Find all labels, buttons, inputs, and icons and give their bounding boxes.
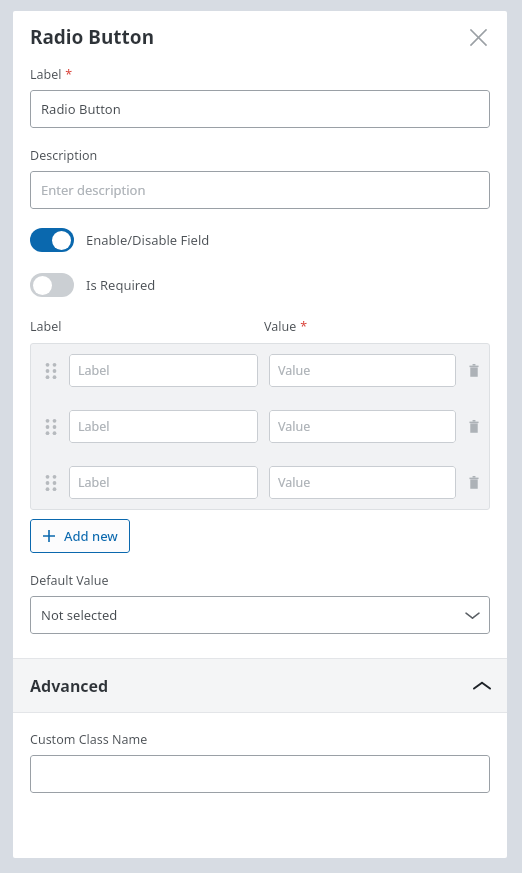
button[interactable]: Reorder <box>40 472 62 494</box>
staticText: Custom Class Name <box>30 731 148 748</box>
staticText: Description <box>30 147 98 164</box>
button[interactable]: Reorder <box>40 360 62 382</box>
staticText: * <box>297 318 308 335</box>
button[interactable]: Enter description <box>30 171 490 209</box>
button[interactable]: Value <box>269 466 456 499</box>
staticText: Value <box>264 318 297 335</box>
button[interactable] <box>30 755 490 793</box>
staticText: * <box>62 66 73 83</box>
button[interactable]: Is Required <box>30 273 156 297</box>
staticText: Enable/Disable Field <box>86 231 210 249</box>
staticText: Enter description <box>41 181 146 199</box>
staticText: Radio Button <box>30 24 466 50</box>
button[interactable]: Delete row <box>468 474 480 492</box>
button[interactable]: Reorder <box>40 416 62 438</box>
button[interactable]: Radio Button <box>30 90 490 128</box>
staticText: Not selected <box>41 606 118 624</box>
staticText: Radio Button <box>41 100 121 118</box>
staticText: Label <box>78 362 110 379</box>
button[interactable]: Delete row <box>468 362 480 380</box>
staticText: Add new <box>64 527 118 545</box>
button[interactable]: Label <box>69 466 258 499</box>
button[interactable]: Not selected <box>30 596 490 634</box>
staticText: Label <box>30 318 264 335</box>
staticText: Value <box>278 362 311 379</box>
staticText: Label <box>30 66 62 83</box>
staticText: Label <box>78 474 110 491</box>
button[interactable]: Value <box>269 354 456 387</box>
button[interactable]: Advanced <box>13 659 507 712</box>
staticText: Advanced <box>30 675 474 697</box>
button[interactable]: Enable/Disable Field <box>30 228 210 252</box>
button[interactable]: Delete row <box>468 418 480 436</box>
button[interactable]: Label <box>69 410 258 443</box>
staticText: Value <box>278 418 311 435</box>
button[interactable]: Add new <box>30 519 130 553</box>
button[interactable]: Close <box>466 25 490 49</box>
staticText: Is Required <box>86 276 156 294</box>
button[interactable]: Label <box>69 354 258 387</box>
staticText: Value <box>278 474 311 491</box>
staticText: Default Value <box>30 572 109 589</box>
button[interactable]: Value <box>269 410 456 443</box>
staticText: Label <box>78 418 110 435</box>
